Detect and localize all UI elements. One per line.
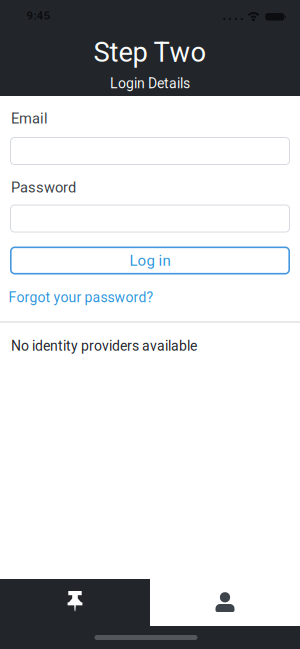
- staticText: 9:45: [26, 9, 50, 22]
- button[interactable]: Password: [10, 204, 290, 232]
- staticText: No identity providers available: [11, 338, 197, 354]
- staticText: Step Two: [93, 36, 206, 68]
- button[interactable]: Forgot your password?: [8, 289, 153, 306]
- button[interactable]: Account: [150, 579, 300, 626]
- button[interactable]: Email: [10, 137, 290, 165]
- staticText: Log in: [129, 252, 170, 269]
- staticText: Login Details: [110, 75, 190, 92]
- button[interactable]: Log in: [10, 246, 290, 274]
- button[interactable]: Pinned: [0, 579, 150, 626]
- staticText: Forgot your password?: [8, 289, 153, 306]
- staticText: Password: [11, 179, 76, 196]
- staticText: Email: [11, 110, 48, 127]
